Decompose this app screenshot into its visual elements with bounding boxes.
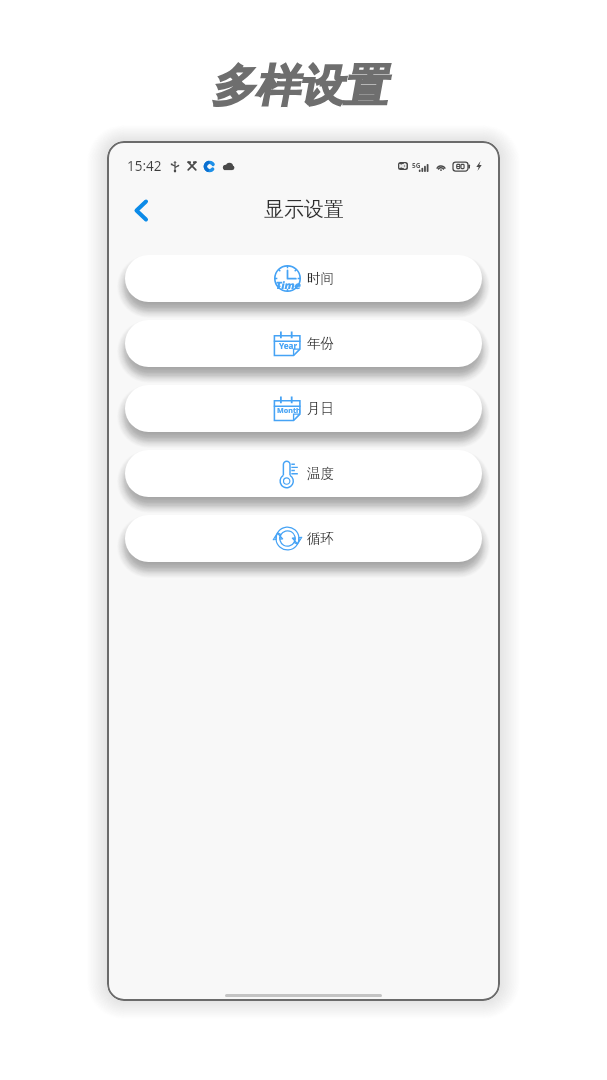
button[interactable]: Month [125, 385, 482, 432]
button[interactable]: 循环 [125, 515, 482, 562]
staticText: Month [277, 405, 301, 415]
button[interactable]: Year [125, 320, 482, 367]
staticText: 15:42 [127, 157, 162, 175]
button[interactable]: 温度 [125, 450, 482, 497]
staticText: Year [279, 340, 298, 351]
staticText: 循环 [307, 530, 334, 547]
staticText: 月日 [307, 400, 334, 417]
staticText: 显示设置 [264, 197, 344, 222]
staticText: 时间 [307, 270, 334, 287]
staticText: 5G [412, 161, 421, 170]
staticText: 年份 [307, 335, 334, 352]
staticText: 温度 [307, 465, 334, 482]
button[interactable]: 时间 [125, 255, 482, 302]
button[interactable]: Back [119, 188, 163, 232]
